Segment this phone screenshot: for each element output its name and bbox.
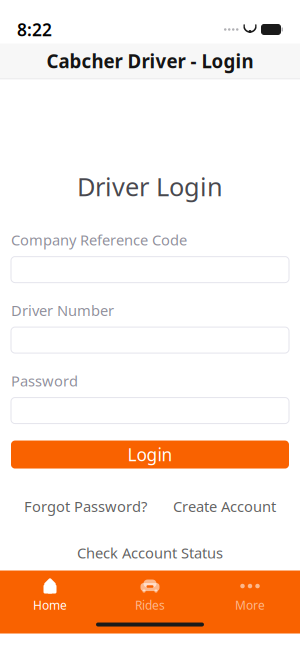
button[interactable]: Check Account Status (77, 543, 223, 562)
button[interactable]: More (200, 578, 300, 612)
staticText: Driver Number (11, 301, 114, 320)
button[interactable]: Login (11, 441, 289, 469)
staticText: Home (33, 597, 67, 613)
staticText: 8:22 (17, 18, 52, 41)
staticText: More (235, 597, 265, 613)
staticText: Create Account (173, 497, 276, 516)
staticText: Forgot Password? (24, 497, 147, 516)
staticText: Company Reference Code (11, 230, 187, 250)
button[interactable]: Forgot Password? (24, 497, 147, 516)
button[interactable]: Create Account (173, 497, 276, 516)
staticText: Cabcher Driver - Login (46, 49, 253, 73)
button[interactable]: Rides (100, 578, 200, 612)
staticText: Driver Login (77, 169, 223, 203)
button[interactable]: Home (0, 578, 100, 612)
staticText: Login (127, 443, 172, 466)
staticText: Check Account Status (77, 543, 223, 562)
staticText: Rides (135, 597, 165, 613)
staticText: Password (11, 371, 78, 391)
